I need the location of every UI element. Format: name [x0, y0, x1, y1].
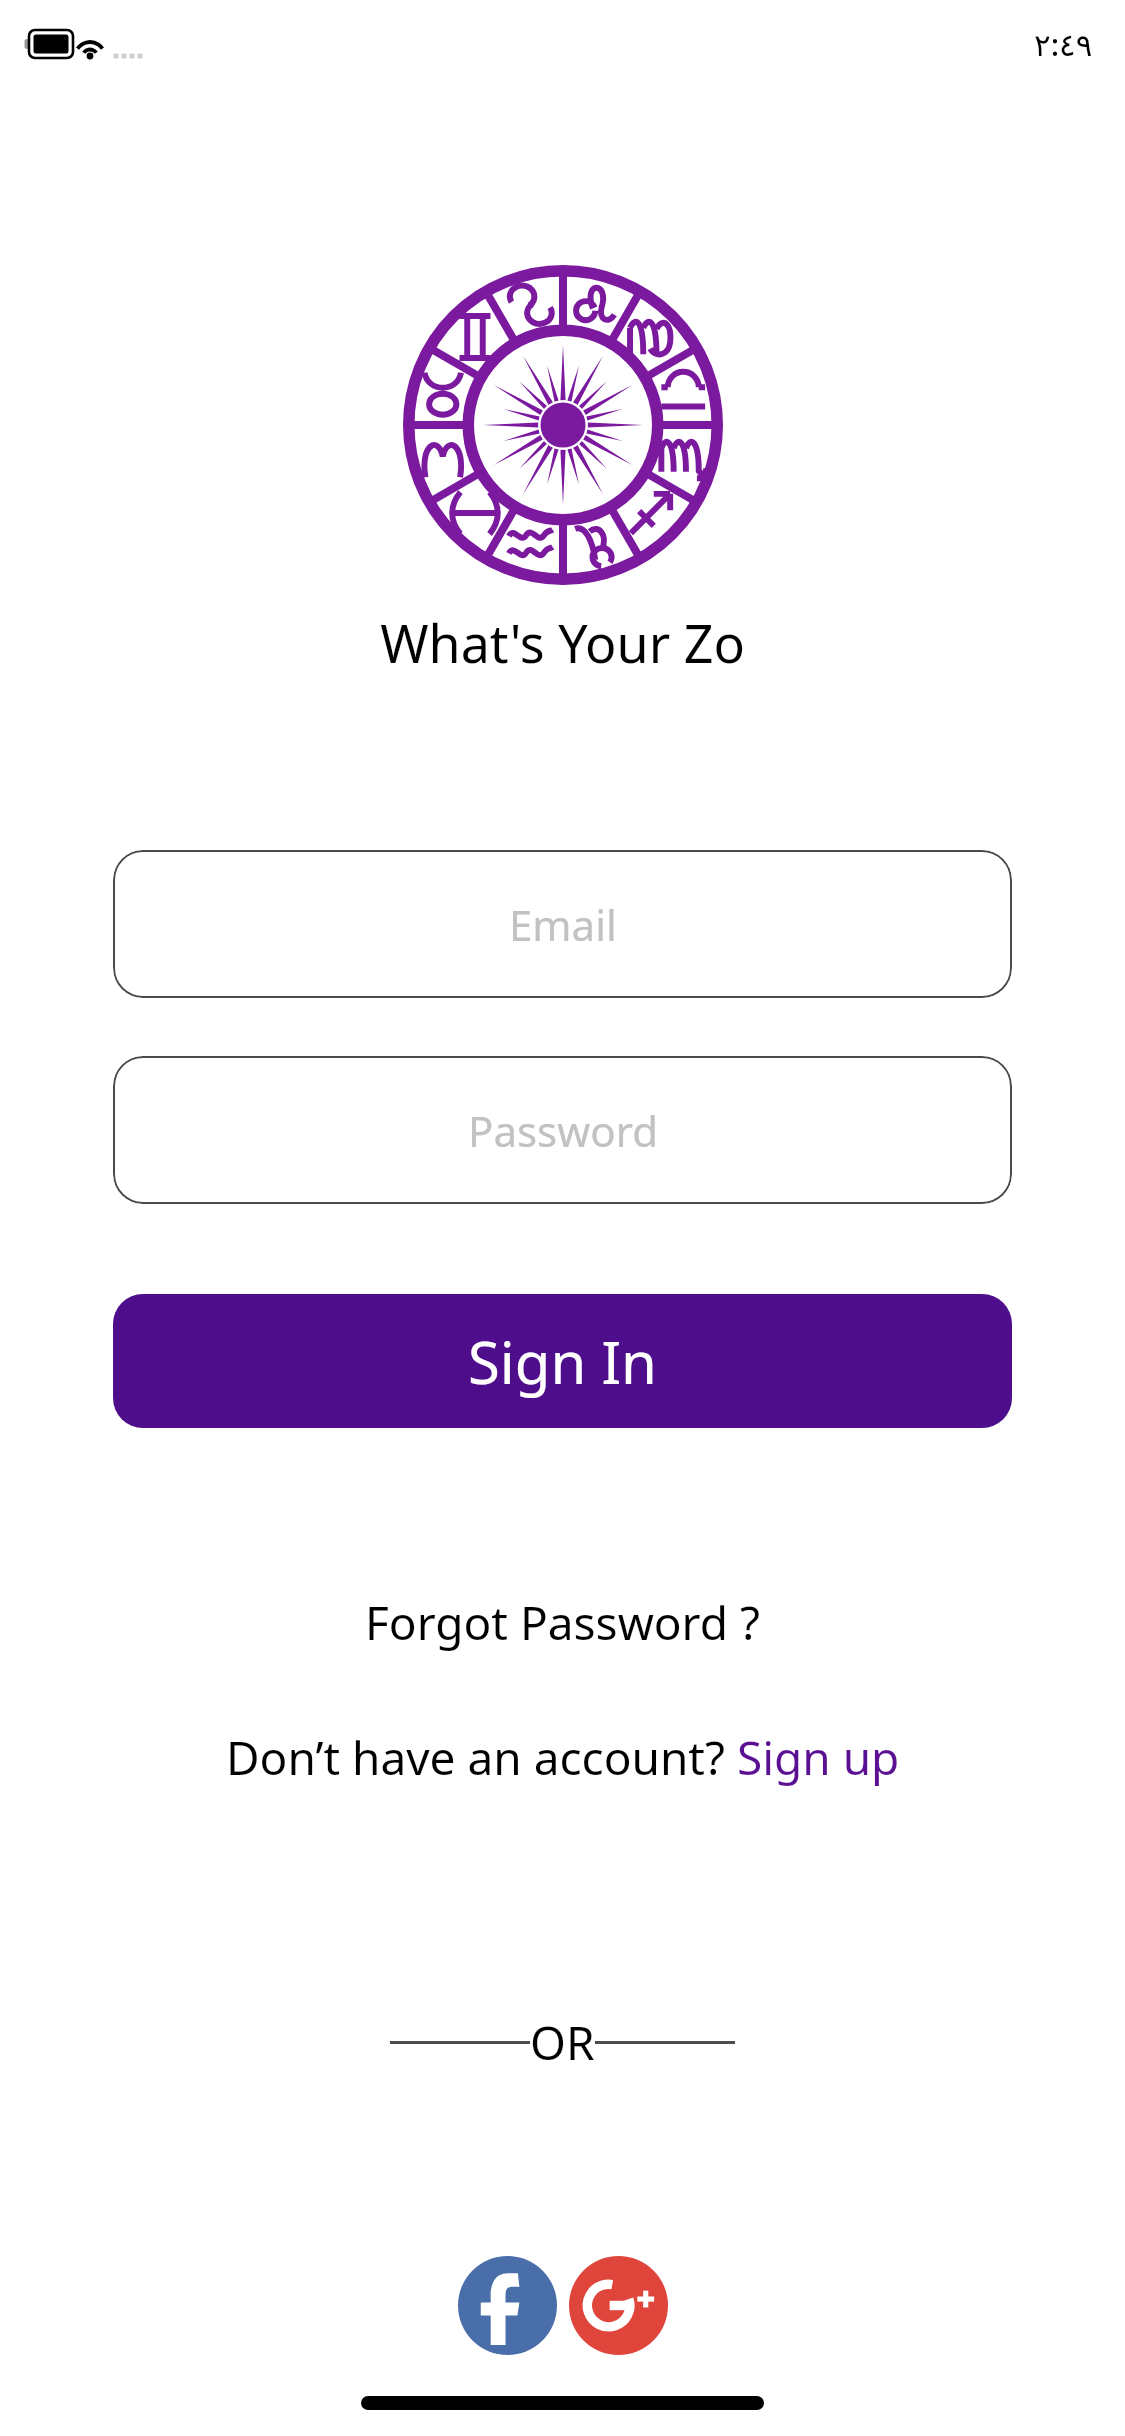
button[interactable]: Email [113, 850, 1012, 998]
staticText: ٢:٤٩ [1034, 23, 1093, 65]
staticText: What's Your Zo [380, 607, 745, 678]
button[interactable]: Sign in with Google Plus [569, 2256, 668, 2355]
button[interactable]: Sign In [113, 1294, 1012, 1428]
button[interactable]: Forgot Password ? [0, 1591, 1125, 1654]
staticText: Forgot Password ? [365, 1591, 760, 1654]
staticText: Email [509, 896, 617, 953]
button[interactable]: Sign in with Facebook [458, 2256, 557, 2355]
staticText: Sign In [468, 1322, 657, 1401]
staticText: OR [530, 2011, 595, 2074]
staticText: Password [468, 1102, 658, 1159]
button[interactable]: Don’t have an account? Sign up [0, 1726, 1125, 1789]
staticText: Don’t have an account? Sign up [226, 1726, 900, 1789]
button[interactable]: Password [113, 1056, 1012, 1204]
